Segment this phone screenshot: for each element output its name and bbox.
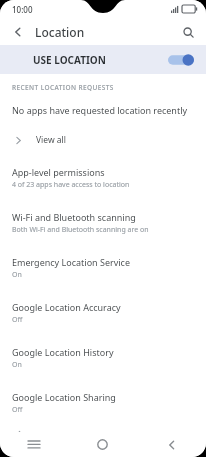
staticText: View all (36, 134, 66, 146)
staticText: On (12, 360, 22, 370)
staticText: Google Location Sharing (12, 391, 116, 403)
button[interactable]: Wi-Fi and Bluetooth scanning (0, 200, 206, 245)
button[interactable]: Home (68, 432, 137, 457)
staticText: USE LOCATION (33, 53, 106, 67)
staticText: Google Location Accuracy (12, 301, 121, 313)
button[interactable]: Google Location History (0, 335, 206, 380)
button[interactable]: No apps have requested location recently (0, 95, 206, 125)
button[interactable]: Google Location Accuracy (0, 290, 206, 335)
button[interactable]: App-level permissions (0, 155, 206, 200)
staticText: Location (35, 24, 85, 40)
staticText: No apps have requested location recently (12, 104, 188, 116)
button[interactable]: Back (6, 20, 30, 44)
staticText: Emergency Location Service (12, 256, 131, 268)
staticText: 4 of 23 apps have access to location (12, 180, 130, 190)
staticText: 10:00 (12, 4, 33, 15)
button[interactable]: Back (137, 432, 206, 457)
button[interactable]: Search (176, 20, 200, 44)
staticText: Wi-Fi and Bluetooth scanning (12, 211, 136, 223)
staticText: Off (12, 315, 23, 325)
button[interactable]: Recent apps (0, 432, 68, 457)
staticText: Off (12, 405, 23, 415)
staticText: On (12, 270, 22, 280)
staticText: RECENT LOCATION REQUESTS (12, 83, 114, 92)
staticText: Google Location History (12, 346, 114, 358)
button[interactable]: Google Location Sharing (0, 380, 206, 425)
staticText: App-level permissions (12, 166, 105, 178)
button[interactable]: Emergency Location Service (0, 245, 206, 290)
button[interactable]: View all (0, 125, 206, 155)
button[interactable]: USE LOCATION (0, 45, 206, 74)
staticText: Both Wi-Fi and Bluetooth scanning are on (12, 225, 149, 235)
